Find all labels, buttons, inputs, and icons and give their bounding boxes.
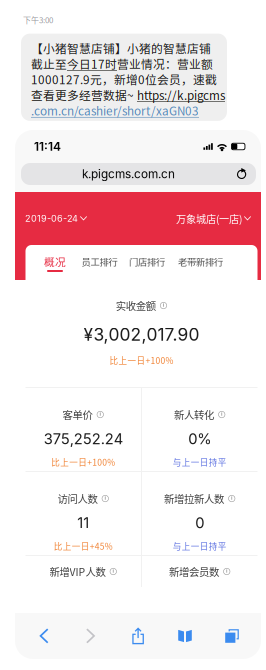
staticText: 访问人数	[57, 491, 97, 506]
staticText: 2019-06-24	[25, 213, 78, 224]
button[interactable]: 员工排行	[76, 245, 122, 278]
staticText: .com.cn/cashier/short/xaGN03	[31, 102, 199, 119]
button[interactable]: 万象城店(一店)	[168, 192, 261, 245]
staticText: 下午3:00	[23, 14, 53, 26]
button[interactable]: 老带新排行	[171, 245, 229, 278]
staticText: 375,252.24	[44, 430, 123, 448]
staticText: 员工排行	[81, 255, 117, 268]
staticText: 截止至今日17时营业情况：营业额	[31, 55, 213, 72]
staticText: 11:14	[34, 139, 61, 154]
button[interactable]: Back	[29, 621, 59, 651]
staticText: 比上一日+100%	[51, 456, 115, 468]
staticText: 老带新排行	[178, 255, 223, 268]
staticText: ¥3,002,017.90	[83, 324, 199, 345]
staticText: 与上一日持平	[173, 456, 227, 468]
button[interactable]: Tabs	[217, 621, 247, 651]
button[interactable]: Share	[123, 621, 153, 651]
button[interactable]: Bookmarks	[170, 621, 200, 651]
staticText: 客单价	[62, 407, 92, 422]
staticText: 与上一日持平	[173, 540, 227, 552]
staticText: 查看更多经营数据~ https://k.pigcms	[31, 86, 225, 103]
button[interactable]: 门店排行	[122, 245, 171, 278]
staticText: 1000127.9元，新增0位会员，速戳	[31, 71, 217, 88]
staticText: 比上一日+100%	[109, 354, 173, 366]
staticText: 0	[195, 514, 204, 532]
staticText: 比上一日+45%	[54, 540, 113, 552]
staticText: 新增拉新人数	[164, 491, 224, 506]
button[interactable]: 2019-06-24	[15, 192, 95, 245]
staticText: 概况	[44, 254, 66, 269]
staticText: 万象城店(一店)	[176, 211, 242, 226]
staticText: 新增VIP人数	[49, 564, 105, 579]
staticText: 11	[77, 514, 89, 532]
staticText: 实收金额	[116, 298, 156, 313]
staticText: 0%	[188, 430, 211, 448]
staticText: 新人转化	[174, 407, 214, 422]
staticText: 【小猪智慧店铺】小猪的智慧店铺	[31, 40, 211, 57]
staticText: k.pigcms.com.cn	[82, 167, 175, 181]
staticText: 门店排行	[129, 255, 165, 268]
button[interactable]: Forward	[76, 621, 106, 651]
staticText: 新增会员数	[169, 564, 219, 579]
button[interactable]: 概况	[33, 245, 76, 278]
